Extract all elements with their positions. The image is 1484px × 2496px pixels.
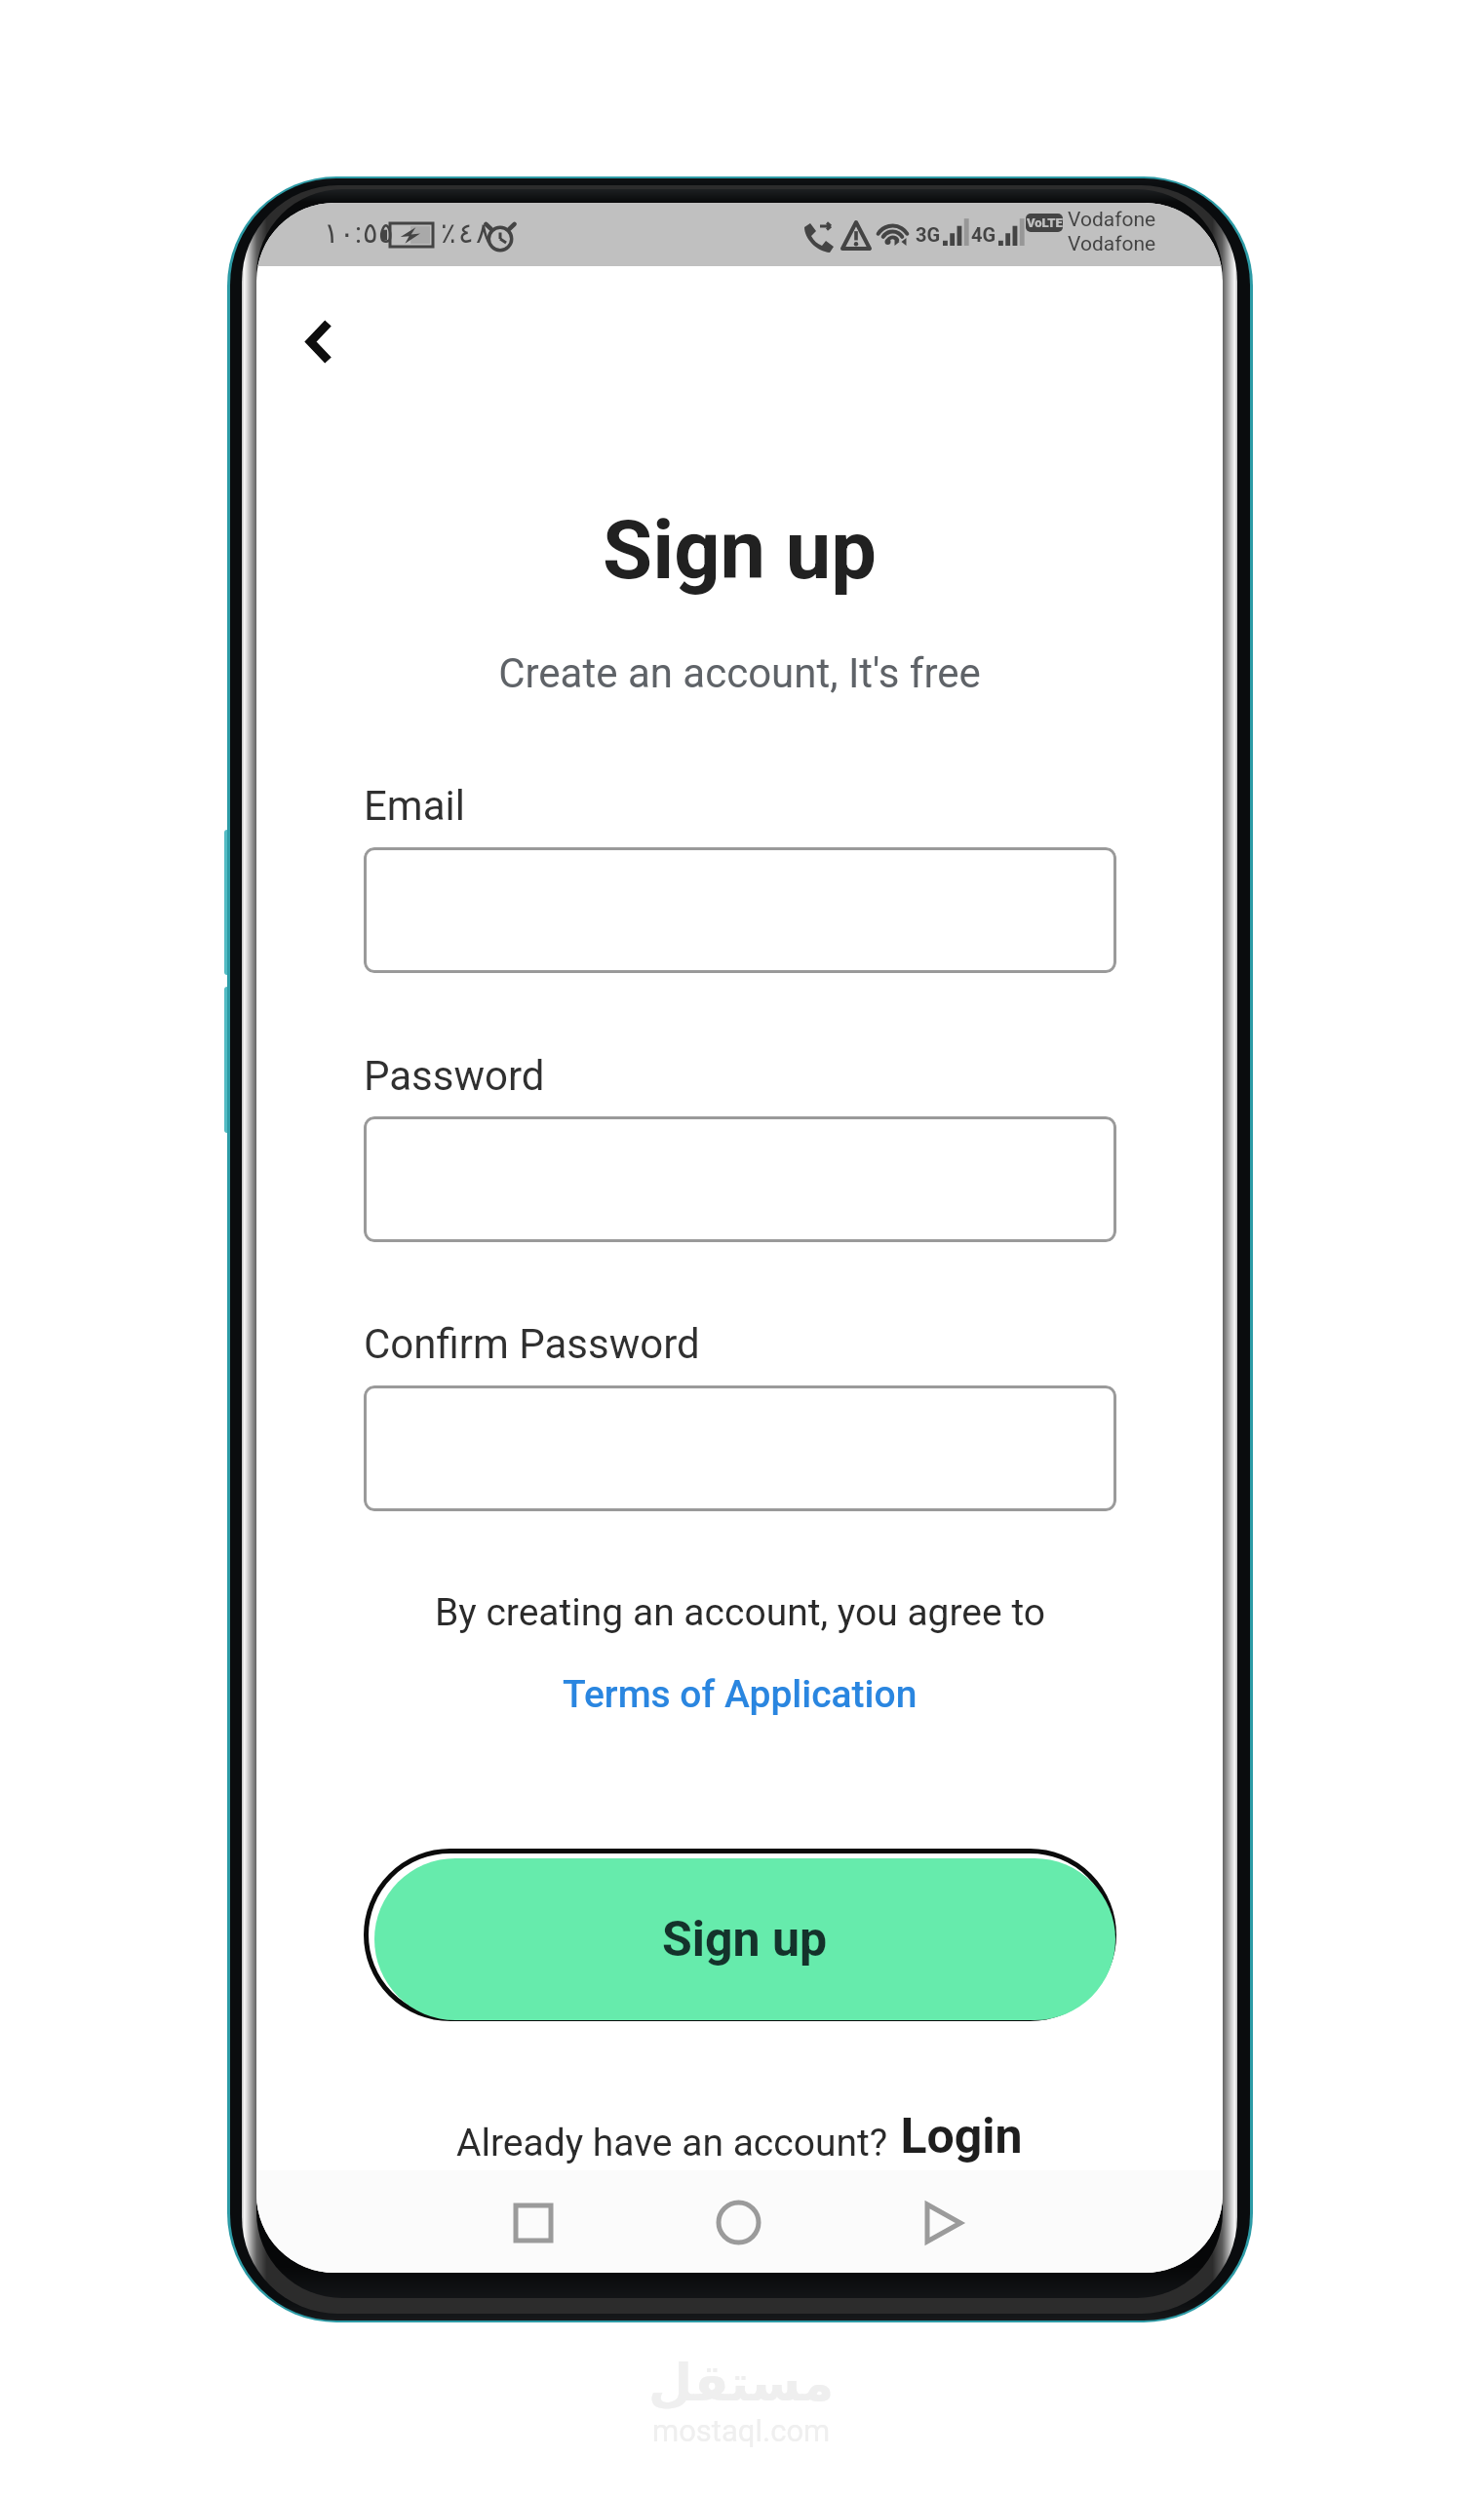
staticText: VoLTE	[1027, 215, 1063, 230]
button[interactable]: Sign up	[374, 1858, 1115, 2020]
staticText: Vodafone	[1068, 208, 1156, 232]
staticText: Sign up	[662, 1911, 828, 1969]
staticText: Terms of Application	[563, 1672, 918, 1717]
button[interactable]	[364, 847, 1116, 973]
staticText: By creating an account, you agree to	[435, 1590, 1045, 1635]
staticText: mostaql.com	[652, 2413, 831, 2448]
staticText: مستقل	[648, 2354, 835, 2413]
staticText: Sign up	[603, 503, 877, 598]
button[interactable]	[364, 1385, 1116, 1511]
button[interactable]: Home	[689, 2170, 787, 2273]
staticText: Login	[888, 2108, 1023, 2165]
button[interactable]: Back	[895, 2170, 993, 2273]
staticText: ١	[324, 216, 339, 250]
button[interactable]: Back	[276, 298, 362, 384]
staticText: :	[355, 216, 363, 250]
staticText: 3G	[916, 223, 941, 246]
staticText: ٠	[339, 216, 355, 250]
staticText: Confirm Password	[364, 1320, 700, 1368]
staticText: ٤	[458, 216, 476, 250]
button[interactable]: Already have an account?	[445, 2100, 1035, 2173]
staticText: ٪	[441, 216, 458, 250]
staticText: Create an account, It's free	[498, 649, 981, 697]
staticText: Already have an account?	[456, 2121, 888, 2165]
staticText: Password	[364, 1052, 545, 1100]
staticText: ٥	[363, 216, 378, 250]
staticText: ٨	[476, 216, 493, 250]
button[interactable]: Recents	[485, 2170, 582, 2273]
staticText: Email	[364, 782, 465, 830]
staticText: Vodafone	[1068, 232, 1156, 256]
button[interactable]	[364, 1116, 1116, 1242]
staticText: 4G	[971, 223, 996, 246]
staticText: ٥	[378, 216, 394, 250]
button[interactable]: Terms of Application	[551, 1662, 929, 1727]
